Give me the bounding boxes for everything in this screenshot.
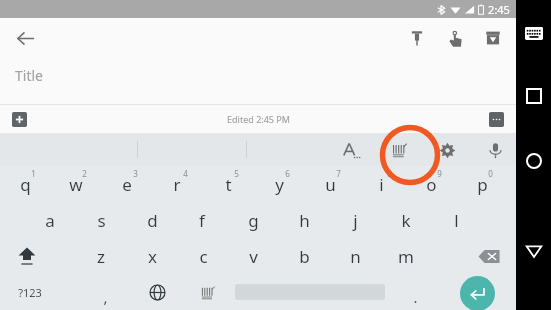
- button[interactable]: ,: [80, 274, 130, 310]
- staticText: 9: [437, 168, 442, 179]
- staticText: s: [97, 209, 106, 232]
- staticText: y: [275, 173, 284, 196]
- staticText: Edited 2:45 PM: [227, 113, 290, 125]
- staticText: 7: [336, 168, 341, 179]
- button[interactable]: Change language: [132, 274, 182, 310]
- staticText: k: [401, 209, 411, 232]
- button[interactable]: z: [76, 238, 126, 274]
- button[interactable]: m: [381, 238, 431, 274]
- button[interactable]: e: [102, 166, 152, 202]
- staticText: q: [20, 173, 31, 196]
- staticText: n: [350, 245, 361, 268]
- button[interactable]: s: [76, 202, 126, 238]
- button[interactable]: r: [152, 166, 202, 202]
- staticText: Title: [15, 66, 43, 85]
- button[interactable]: Shift: [4, 238, 50, 274]
- staticText: p: [477, 173, 488, 196]
- staticText: 2:45: [488, 2, 510, 17]
- button[interactable]: Text formatting: [336, 135, 366, 165]
- button[interactable]: Pin: [402, 23, 432, 53]
- button[interactable]: j: [330, 202, 380, 238]
- button[interactable]: u: [305, 166, 355, 202]
- button[interactable]: Backspace: [466, 238, 512, 274]
- staticText: z: [97, 245, 105, 268]
- button[interactable]: v: [228, 238, 278, 274]
- staticText: 0: [488, 168, 493, 179]
- staticText: m: [398, 245, 414, 268]
- staticText: l: [454, 209, 459, 232]
- staticText: h: [299, 209, 310, 232]
- button[interactable]: Recent apps: [520, 82, 548, 110]
- staticText: o: [426, 173, 437, 196]
- button[interactable]: p: [457, 166, 507, 202]
- staticText: 1: [31, 168, 36, 179]
- button[interactable]: Voice input: [480, 135, 510, 165]
- button[interactable]: ?123: [4, 274, 56, 310]
- button[interactable]: y: [254, 166, 304, 202]
- staticText: r: [173, 173, 181, 196]
- button[interactable]: Enter: [460, 276, 495, 310]
- button[interactable]: h: [279, 202, 329, 238]
- staticText: j: [353, 209, 358, 232]
- staticText: t: [225, 173, 232, 196]
- button[interactable]: k: [381, 202, 431, 238]
- button[interactable]: t: [203, 166, 253, 202]
- button[interactable]: b: [279, 238, 329, 274]
- staticText: g: [248, 209, 259, 232]
- button[interactable]: g: [228, 202, 278, 238]
- button[interactable]: Archive: [478, 23, 508, 53]
- staticText: 5: [234, 168, 239, 179]
- button[interactable]: Back: [10, 23, 40, 53]
- button[interactable]: l: [431, 202, 481, 238]
- button[interactable]: x: [127, 238, 177, 274]
- button[interactable]: Add: [8, 108, 30, 130]
- button[interactable]: w: [51, 166, 101, 202]
- button[interactable]: Home: [520, 147, 548, 175]
- button[interactable]: n: [330, 238, 380, 274]
- staticText: .: [413, 287, 418, 307]
- button[interactable]: f: [177, 202, 227, 238]
- button[interactable]: Back: [520, 237, 548, 265]
- button[interactable]: c: [178, 238, 228, 274]
- staticText: i: [379, 173, 384, 196]
- staticText: d: [147, 209, 158, 232]
- button[interactable]: a: [25, 202, 75, 238]
- staticText: f: [199, 209, 205, 232]
- button[interactable]: More options: [485, 108, 507, 130]
- button[interactable]: Handwriting: [384, 135, 414, 165]
- staticText: w: [69, 173, 83, 196]
- button[interactable]: Handwriting input: [182, 274, 232, 310]
- staticText: 3: [133, 168, 138, 179]
- staticText: v: [249, 245, 258, 268]
- staticText: 8: [387, 168, 392, 179]
- button[interactable]: d: [127, 202, 177, 238]
- staticText: b: [299, 245, 310, 268]
- staticText: u: [325, 173, 336, 196]
- staticText: 4: [183, 168, 188, 179]
- button[interactable]: o: [406, 166, 456, 202]
- staticText: ,: [103, 287, 108, 307]
- button[interactable]: .: [392, 274, 438, 310]
- staticText: e: [122, 173, 132, 196]
- staticText: c: [199, 245, 208, 268]
- button[interactable]: q: [0, 166, 50, 202]
- staticText: a: [45, 209, 55, 232]
- staticText: 2: [82, 168, 87, 179]
- button[interactable]: i: [356, 166, 406, 202]
- staticText: 6: [285, 168, 290, 179]
- staticText: x: [148, 245, 157, 268]
- staticText: ?123: [18, 285, 42, 300]
- button[interactable]: Hide keyboard: [521, 20, 547, 46]
- button[interactable]: Settings: [432, 135, 462, 165]
- button[interactable]: Reminder: [440, 23, 470, 53]
